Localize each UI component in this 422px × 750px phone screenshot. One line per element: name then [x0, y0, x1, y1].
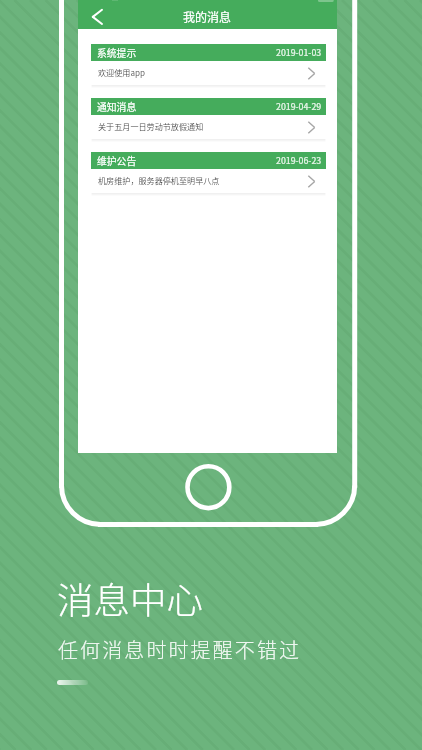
staticText: 系统提示 — [97, 46, 137, 60]
staticText: 维护公告 — [97, 154, 137, 168]
button[interactable]: 维护公告 — [91, 152, 326, 193]
staticText: 任何消息时时提醒不错过 — [58, 635, 302, 664]
button[interactable]: 通知消息 — [91, 98, 326, 139]
staticText: 消息中心 — [57, 572, 203, 625]
staticText: 通知消息 — [97, 100, 137, 114]
staticText: 我的消息 — [183, 8, 232, 25]
staticText: 关于五月一日劳动节放假通知 — [98, 121, 204, 133]
staticText: 2019-01-03 — [276, 46, 322, 59]
button[interactable]: Back — [78, 0, 108, 29]
staticText: 欢迎使用app — [98, 67, 145, 79]
staticText: 2019-06-23 — [276, 154, 322, 167]
staticText: 2019-04-29 — [276, 100, 322, 113]
button[interactable]: 系统提示 — [91, 44, 326, 85]
staticText: 机房维护，服务器停机至明早八点 — [98, 175, 220, 187]
